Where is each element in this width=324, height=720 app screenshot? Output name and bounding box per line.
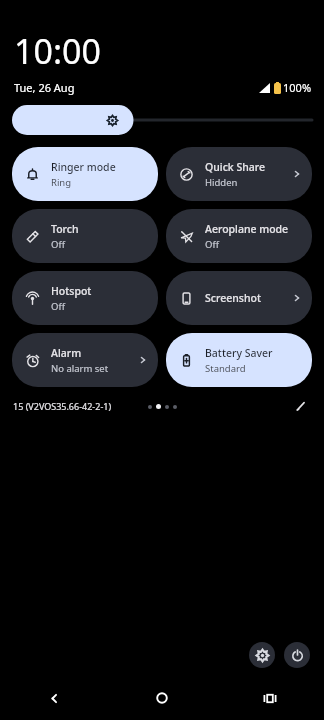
staticText: Standard (205, 362, 246, 375)
button[interactable]: Power (284, 642, 310, 668)
staticText: 10:00 (14, 28, 101, 74)
staticText: Screenshot (205, 291, 261, 305)
staticText: Off (205, 238, 219, 251)
button[interactable]: Recent apps (216, 686, 324, 710)
staticText: Aeroplane mode (205, 222, 289, 236)
button[interactable]: Back (0, 686, 108, 710)
button[interactable]: Hotspot (12, 271, 158, 325)
button[interactable]: Screenshot (166, 271, 312, 325)
button[interactable]: Edit tiles (291, 396, 311, 416)
staticText: Quick Share (205, 160, 266, 174)
staticText: Ring (51, 176, 72, 189)
button[interactable] (12, 105, 312, 135)
staticText: Hotspot (51, 284, 92, 298)
staticText: Tue, 26 Aug (14, 80, 75, 95)
button[interactable]: Ringer mode (12, 147, 158, 201)
staticText: 15 (V2VOS35.66-42-2-1) (13, 400, 112, 412)
button[interactable]: Alarm (12, 333, 158, 387)
button[interactable]: Home (108, 686, 216, 710)
staticText: Battery Saver (205, 346, 273, 360)
button[interactable]: Torch (12, 209, 158, 263)
staticText: No alarm set (51, 362, 109, 375)
staticText: 100% (283, 80, 312, 95)
staticText: Off (51, 300, 65, 313)
button[interactable]: Battery Saver (166, 333, 312, 387)
button[interactable]: Aeroplane mode (166, 209, 312, 263)
staticText: Off (51, 238, 65, 251)
staticText: Ringer mode (51, 160, 116, 174)
staticText: Alarm (51, 346, 82, 360)
button[interactable]: Settings (249, 642, 275, 668)
staticText: Torch (51, 222, 79, 236)
button[interactable]: Quick Share (166, 147, 312, 201)
staticText: Hidden (205, 176, 238, 189)
